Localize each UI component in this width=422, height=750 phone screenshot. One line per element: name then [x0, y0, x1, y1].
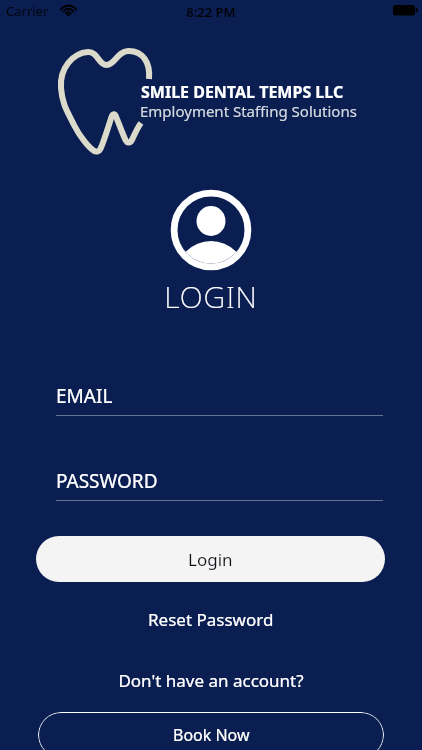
staticText: Don't have an account?: [0, 669, 422, 692]
staticText: EMAIL: [56, 383, 113, 409]
staticText: Reset Password: [148, 608, 274, 631]
button[interactable]: EMAIL: [56, 383, 383, 416]
staticText: Carrier: [6, 2, 49, 20]
button[interactable]: Book Now: [38, 712, 384, 750]
staticText: SMILE DENTAL TEMPS LLC: [141, 81, 344, 103]
staticText: Book Now: [173, 724, 250, 746]
button[interactable]: PASSWORD: [56, 468, 383, 501]
staticText: Login: [188, 548, 233, 571]
staticText: Employment Staffing Solutions: [140, 101, 357, 121]
staticText: LOGIN: [0, 276, 422, 317]
staticText: 8:22 PM: [0, 3, 422, 21]
button[interactable]: Reset Password: [140, 600, 282, 639]
button[interactable]: Login: [36, 536, 385, 582]
staticText: PASSWORD: [56, 468, 158, 494]
